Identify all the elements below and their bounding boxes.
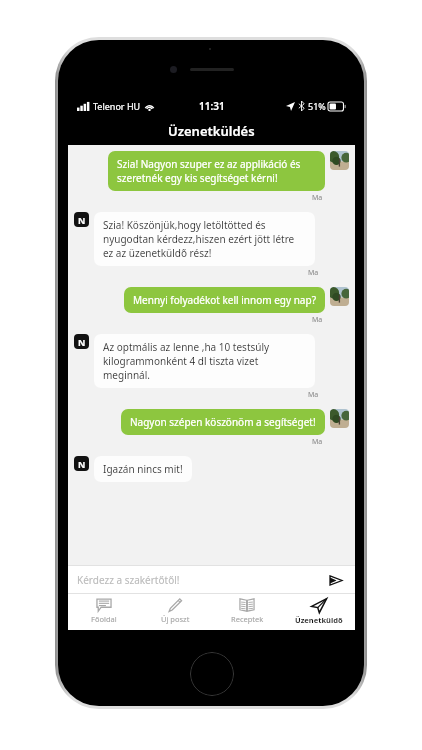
staticText: Kérdezz a szakértőtől!	[77, 573, 180, 587]
button[interactable]: Szakértő	[74, 334, 89, 349]
staticText: N	[78, 336, 86, 348]
staticText: 51%	[308, 100, 326, 112]
staticText: Főoldal	[91, 614, 117, 624]
staticText: Üzenetküldő	[295, 615, 343, 625]
button[interactable]: Profilkép	[330, 287, 349, 306]
staticText: N	[78, 214, 86, 226]
staticText: Receptek	[231, 614, 264, 624]
staticText: Ma	[308, 390, 319, 400]
button[interactable]: Üzenetküldő	[283, 594, 355, 630]
button[interactable]: Szakértő	[74, 456, 89, 471]
button[interactable]: Szakértő	[74, 212, 89, 227]
button[interactable]: Profilkép	[330, 151, 349, 170]
staticText: Az optmális az lenne ,ha 10 testsúly kil…	[103, 340, 306, 382]
button[interactable]: Igazán nincs mit!	[94, 456, 192, 482]
staticText: Ma	[312, 437, 323, 447]
staticText: Ma	[312, 193, 323, 203]
staticText: 11:31	[199, 99, 225, 113]
button[interactable]: Kérdezz a szakértőtől!	[77, 573, 326, 587]
staticText: Üzenetküldés	[168, 122, 255, 140]
staticText: Mennyi folyadékot kell innom egy nap?	[133, 293, 316, 307]
staticText: Igazán nincs mit!	[103, 462, 183, 476]
button[interactable]: Receptek	[211, 594, 283, 630]
staticText: Szia! Köszönjük,hogy letöltötted és nyug…	[103, 218, 306, 260]
button[interactable]: Mennyi folyadékot kell innom egy nap?	[124, 287, 325, 313]
button[interactable]: Profilkép	[330, 409, 349, 428]
button[interactable]: Küldés	[326, 570, 346, 590]
staticText: Ma	[312, 315, 323, 325]
staticText: N	[78, 458, 86, 470]
button[interactable]: Az optmális az lenne ,ha 10 testsúly kil…	[94, 334, 315, 388]
staticText: Telenor HU	[93, 100, 141, 112]
staticText: Nagyon szépen köszönöm a segítséget!	[130, 415, 316, 429]
button[interactable]: Szia! Köszönjük,hogy letöltötted és nyug…	[94, 212, 315, 266]
button[interactable]: Szia! Nagyon szuper ez az applikáció és …	[108, 151, 325, 191]
staticText: Új poszt	[161, 614, 190, 624]
staticText: Szia! Nagyon szuper ez az applikáció és …	[117, 157, 316, 185]
button[interactable]: Nagyon szépen köszönöm a segítséget!	[121, 409, 325, 435]
staticText: Ma	[308, 268, 319, 278]
button[interactable]: Új poszt	[139, 594, 211, 630]
button[interactable]: Főoldal	[68, 594, 139, 630]
